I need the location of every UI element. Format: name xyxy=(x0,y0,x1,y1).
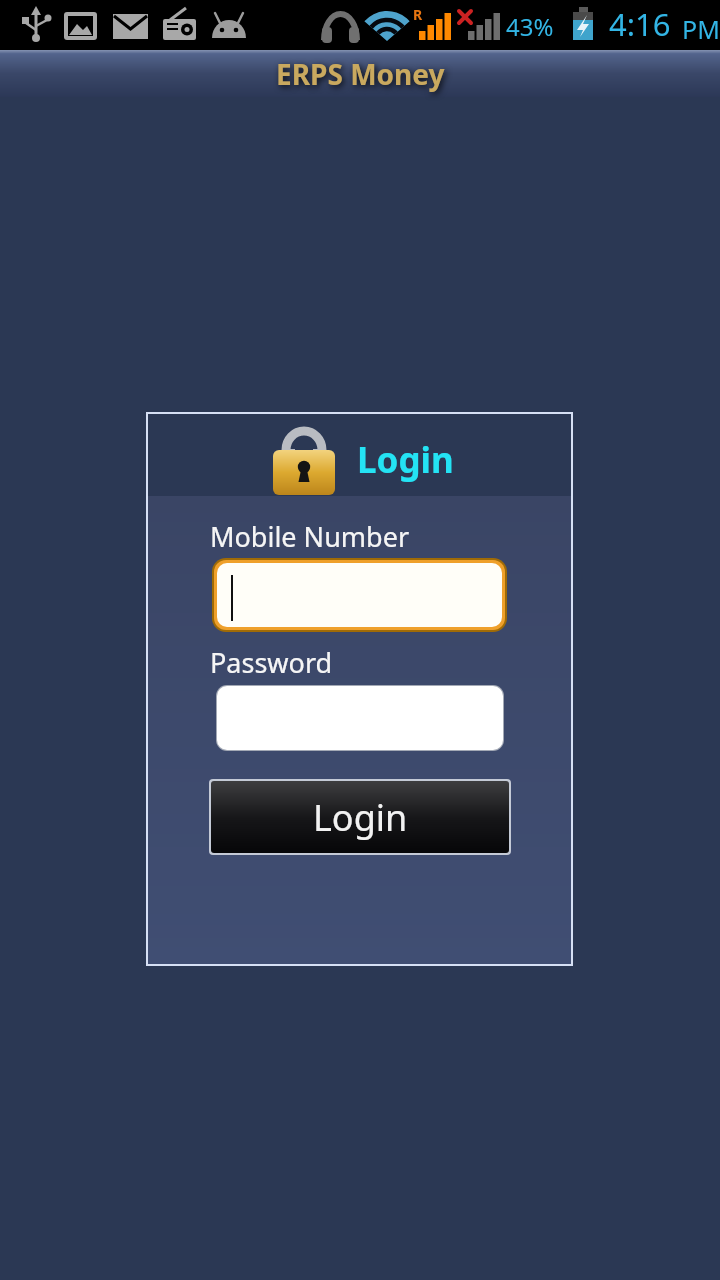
button[interactable] xyxy=(216,685,504,751)
staticText: R xyxy=(413,5,423,24)
button[interactable]: Login xyxy=(209,779,511,855)
button[interactable] xyxy=(212,558,507,632)
staticText: ERPS Money xyxy=(276,55,445,93)
staticText: Password xyxy=(210,644,333,681)
staticText: 43% xyxy=(506,10,554,43)
staticText: Login xyxy=(313,793,408,842)
staticText: 4:16 xyxy=(609,3,671,45)
staticText: Login xyxy=(357,436,454,484)
staticText: Mobile Number xyxy=(210,518,410,555)
staticText: PM xyxy=(682,12,720,46)
